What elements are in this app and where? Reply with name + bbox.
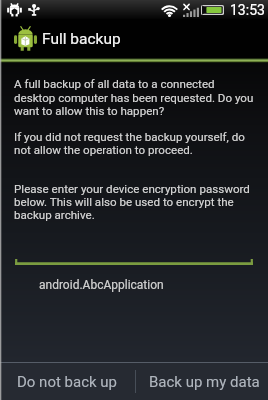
staticText: 13:53	[230, 2, 265, 18]
button[interactable]: Back up my data	[136, 363, 268, 400]
staticText: Do not back up	[17, 373, 118, 391]
staticText: Back up my data	[149, 373, 260, 391]
button[interactable]: Encryption password field	[15, 257, 253, 265]
staticText: android.AbcApplication	[39, 278, 164, 292]
staticText: Full backup	[42, 30, 121, 48]
staticText: A full backup of all data to a connected…	[14, 77, 254, 221]
button[interactable]: Do not back up	[0, 363, 135, 400]
